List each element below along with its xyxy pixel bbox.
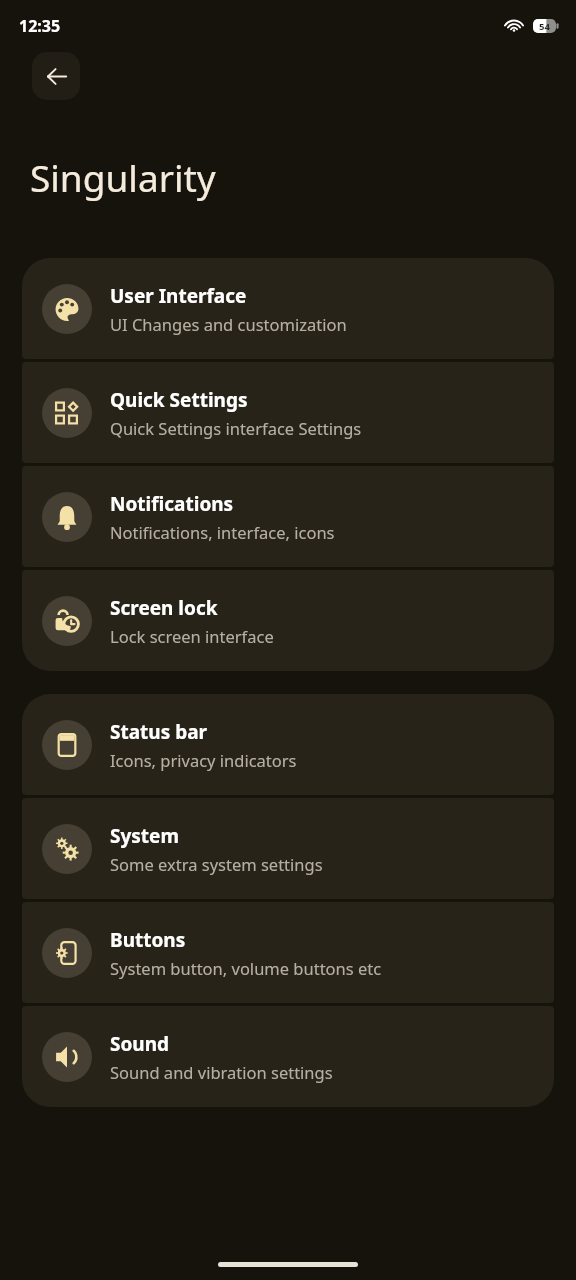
- staticText: System button, volume buttons etc: [110, 957, 382, 979]
- staticText: Buttons: [110, 927, 186, 953]
- button[interactable]: Status bar: [22, 694, 554, 795]
- staticText: Icons, privacy indicators: [110, 749, 297, 771]
- button[interactable]: Quick Settings: [22, 362, 554, 463]
- staticText: Singularity: [30, 152, 216, 202]
- staticText: Lock screen interface: [110, 625, 274, 647]
- staticText: UI Changes and customization: [110, 313, 347, 335]
- button[interactable]: User Interface: [22, 258, 554, 359]
- staticText: Screen lock: [110, 595, 218, 621]
- staticText: Quick Settings interface Settings: [110, 417, 362, 439]
- staticText: User Interface: [110, 283, 247, 309]
- button[interactable]: Screen lock: [22, 570, 554, 671]
- staticText: Quick Settings: [110, 387, 248, 413]
- staticText: Sound: [110, 1031, 170, 1057]
- staticText: Sound and vibration settings: [110, 1061, 333, 1083]
- staticText: Notifications: [110, 491, 234, 517]
- button[interactable]: Sound: [22, 1006, 554, 1107]
- staticText: System: [110, 823, 179, 849]
- staticText: 54: [539, 20, 550, 33]
- staticText: 12:35: [19, 15, 61, 37]
- button[interactable]: Notifications: [22, 466, 554, 567]
- staticText: Notifications, interface, icons: [110, 521, 335, 543]
- button[interactable]: Back: [32, 52, 80, 100]
- button[interactable]: System: [22, 798, 554, 899]
- button[interactable]: Buttons: [22, 902, 554, 1003]
- staticText: Some extra system settings: [110, 853, 323, 875]
- staticText: Status bar: [110, 719, 208, 745]
